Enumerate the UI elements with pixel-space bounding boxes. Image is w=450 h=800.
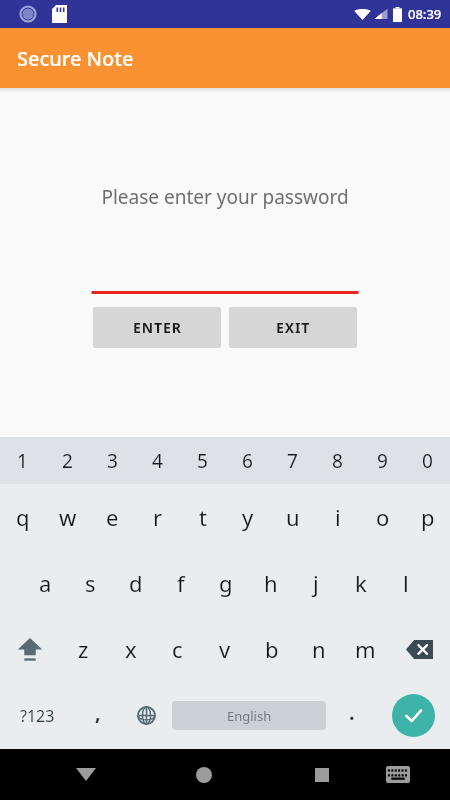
button[interactable]: h	[248, 550, 293, 616]
staticText: 8	[332, 448, 343, 474]
button[interactable]: j	[293, 550, 338, 616]
button[interactable]: .	[328, 682, 376, 749]
staticText: n	[312, 634, 326, 664]
staticText: o	[376, 502, 390, 532]
staticText: v	[219, 634, 231, 664]
staticText: 0	[422, 448, 433, 474]
button[interactable]: 8	[315, 437, 360, 484]
staticText: 1	[17, 448, 28, 474]
button[interactable]: p	[405, 484, 450, 550]
button[interactable]: f	[158, 550, 203, 616]
button[interactable]: 6	[225, 437, 270, 484]
button[interactable]: i	[315, 484, 360, 550]
button[interactable]: o	[360, 484, 405, 550]
staticText: r	[153, 502, 163, 532]
staticText: 2	[62, 448, 73, 474]
staticText: 08:39	[408, 5, 442, 23]
staticText: 9	[377, 448, 388, 474]
staticText: ,	[95, 699, 101, 726]
staticText: 3	[107, 448, 118, 474]
staticText: .	[349, 699, 355, 726]
staticText: z	[78, 634, 89, 664]
button[interactable]: z	[60, 616, 107, 682]
staticText: Secure Note	[17, 45, 134, 72]
staticText: a	[39, 568, 52, 598]
button[interactable]: Switch keyboard	[360, 749, 436, 800]
staticText: u	[286, 502, 300, 532]
button[interactable]: English	[172, 701, 326, 730]
staticText: w	[59, 502, 77, 532]
staticText: g	[219, 568, 233, 598]
staticText: p	[421, 502, 435, 532]
button[interactable]: Backspace	[389, 616, 450, 682]
button[interactable]: l	[383, 550, 428, 616]
staticText: q	[16, 502, 30, 532]
button[interactable]: d	[113, 550, 158, 616]
button[interactable]: 9	[360, 437, 405, 484]
button[interactable]: n	[295, 616, 342, 682]
staticText: f	[177, 568, 185, 598]
staticText: ENTER	[133, 318, 182, 337]
staticText: EXIT	[276, 318, 311, 337]
staticText: i	[335, 502, 341, 532]
staticText: c	[172, 634, 183, 664]
staticText: ?123	[20, 705, 55, 727]
button[interactable]: 5	[180, 437, 225, 484]
staticText: l	[403, 568, 409, 598]
button[interactable]: Change language	[122, 682, 170, 749]
button[interactable]: c	[154, 616, 201, 682]
staticText: y	[242, 502, 254, 532]
button[interactable]: EXIT	[229, 307, 357, 348]
staticText: b	[265, 634, 279, 664]
staticText: m	[355, 634, 376, 664]
staticText: t	[199, 502, 207, 532]
staticText: s	[85, 568, 96, 598]
staticText: 7	[287, 448, 298, 474]
button[interactable]: t	[180, 484, 225, 550]
button[interactable]: v	[201, 616, 248, 682]
button[interactable]: s	[68, 550, 113, 616]
button[interactable]: 4	[135, 437, 180, 484]
staticText: 6	[242, 448, 253, 474]
button[interactable]: 2	[45, 437, 90, 484]
button[interactable]: 3	[90, 437, 135, 484]
button[interactable]: e	[90, 484, 135, 550]
staticText: Please enter your password	[101, 184, 349, 210]
button[interactable]: b	[248, 616, 295, 682]
button[interactable]: ,	[74, 682, 122, 749]
button[interactable]: Done	[376, 682, 450, 749]
staticText: h	[264, 568, 278, 598]
button[interactable]: Hide keyboard	[48, 749, 124, 800]
button[interactable]: Password field	[93, 268, 357, 294]
button[interactable]: a	[22, 550, 68, 616]
button[interactable]: y	[225, 484, 270, 550]
button[interactable]: m	[342, 616, 389, 682]
staticText: e	[106, 502, 119, 532]
staticText: 5	[197, 448, 208, 474]
button[interactable]: Recent apps	[284, 749, 360, 800]
button[interactable]: Shift	[0, 616, 60, 682]
button[interactable]: g	[203, 550, 248, 616]
button[interactable]: w	[45, 484, 90, 550]
button[interactable]: x	[107, 616, 154, 682]
staticText: j	[313, 568, 319, 598]
button[interactable]: k	[338, 550, 383, 616]
button[interactable]: Home	[166, 749, 242, 800]
button[interactable]: ?123	[0, 682, 74, 749]
button[interactable]: u	[270, 484, 315, 550]
staticText: 4	[152, 448, 163, 474]
staticText: d	[129, 568, 143, 598]
button[interactable]: 1	[0, 437, 45, 484]
staticText: k	[355, 568, 367, 598]
staticText: English	[227, 707, 272, 725]
staticText: x	[125, 634, 137, 664]
button[interactable]: 7	[270, 437, 315, 484]
button[interactable]: q	[0, 484, 45, 550]
button[interactable]: r	[135, 484, 180, 550]
button[interactable]: ENTER	[93, 307, 221, 348]
button[interactable]: 0	[405, 437, 450, 484]
